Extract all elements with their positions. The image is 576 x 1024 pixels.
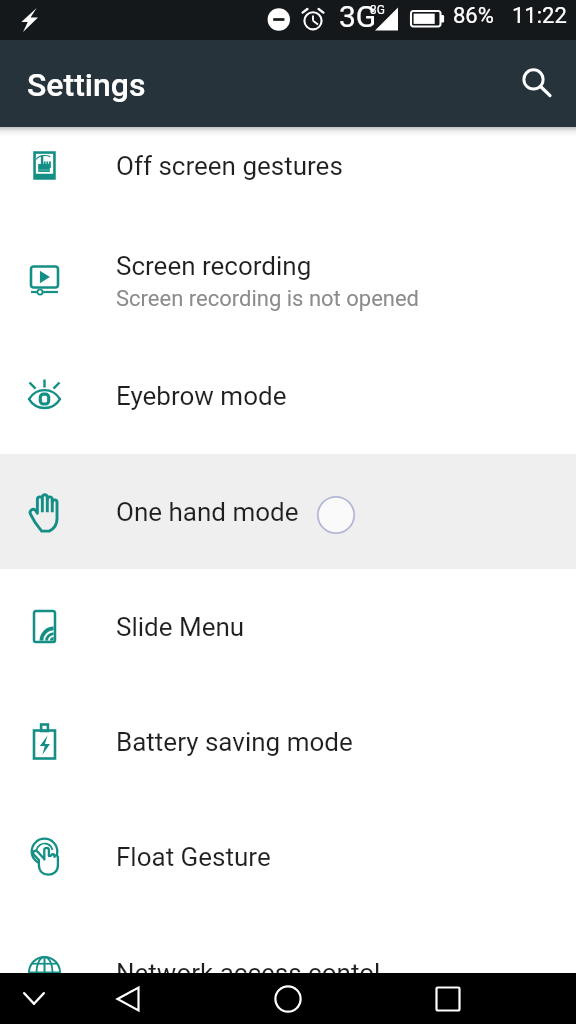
staticText: 3G [339, 0, 377, 34]
button[interactable]: Float Gesture [0, 799, 576, 914]
button[interactable]: Search [512, 57, 566, 111]
staticText: Off screen gestures [116, 151, 343, 181]
staticText: Settings [27, 66, 146, 104]
button[interactable]: Slide Menu [0, 569, 576, 684]
button[interactable]: Eyebrow mode [0, 338, 576, 453]
staticText: Float Gesture [116, 842, 271, 872]
staticText: 11:22 [512, 3, 567, 29]
staticText: Eyebrow mode [116, 381, 287, 411]
button[interactable]: Network access contol [0, 915, 576, 973]
button[interactable]: Back [102, 973, 154, 1024]
button[interactable]: One hand mode [0, 454, 576, 569]
button[interactable]: Battery saving mode [0, 684, 576, 799]
button[interactable]: Recents [422, 973, 474, 1024]
staticText: Battery saving mode [116, 727, 353, 757]
staticText: 86% [453, 3, 494, 29]
button[interactable]: Home [262, 973, 314, 1024]
staticText: One hand mode [116, 497, 299, 527]
button[interactable]: Hide keyboard [8, 973, 60, 1024]
button[interactable]: Off screen gestures [0, 127, 576, 223]
staticText: Screen recording [116, 251, 312, 281]
staticText: Slide Menu [116, 612, 245, 642]
button[interactable]: Screen recording [0, 223, 576, 338]
staticText: Network access contol [116, 958, 381, 973]
staticText: Screen recording is not opened [116, 286, 420, 312]
staticText: 3G [370, 3, 385, 17]
